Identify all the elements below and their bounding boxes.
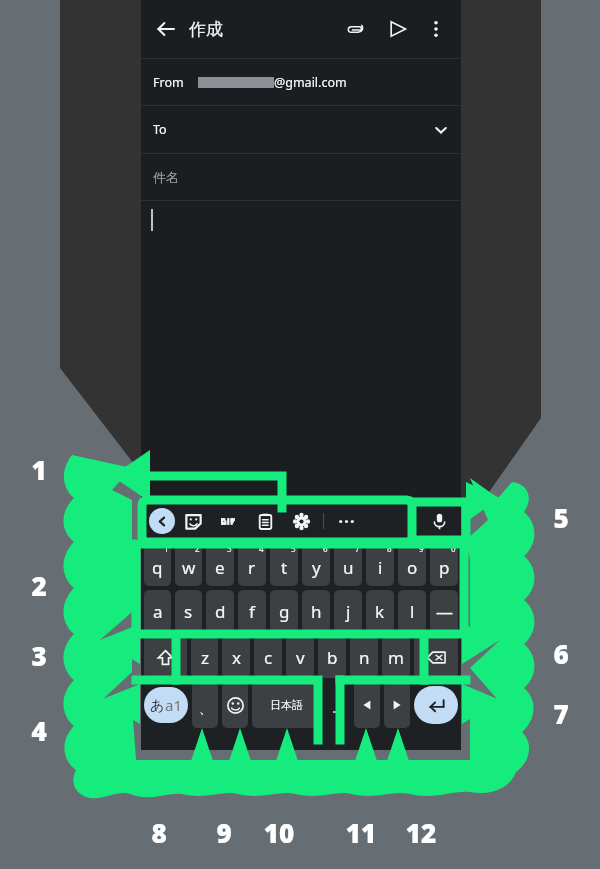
- staticText: v: [296, 646, 305, 669]
- button[interactable]: 、: [192, 682, 218, 728]
- button[interactable]: Voice input: [423, 505, 455, 537]
- button[interactable]: Back: [149, 12, 183, 46]
- staticText: r: [248, 556, 256, 579]
- staticText: e: [215, 556, 225, 579]
- staticText: o: [407, 556, 418, 579]
- staticText: To: [153, 121, 167, 138]
- button[interactable]: p: [430, 544, 458, 586]
- button[interactable]: u: [334, 544, 362, 586]
- button[interactable]: Settings: [283, 503, 319, 539]
- staticText: 7: [355, 544, 360, 554]
- staticText: h: [311, 600, 322, 623]
- staticText: g: [279, 600, 290, 623]
- button[interactable]: o: [398, 544, 426, 586]
- staticText: j: [346, 600, 351, 623]
- staticText: n: [359, 646, 370, 669]
- staticText: w: [182, 556, 196, 579]
- button[interactable]: To: [141, 106, 461, 153]
- button[interactable]: Move cursor right: [384, 682, 410, 728]
- staticText: 2: [195, 544, 200, 554]
- button[interactable]: Move cursor left: [354, 682, 380, 728]
- staticText: あ: [150, 697, 165, 715]
- staticText: 7: [540, 696, 582, 731]
- staticText: 0: [451, 544, 456, 554]
- staticText: 作成: [189, 19, 223, 40]
- button[interactable]: More options: [419, 12, 453, 46]
- staticText: 4: [259, 544, 264, 554]
- button[interactable]: x: [222, 636, 250, 678]
- staticText: x: [232, 646, 241, 669]
- button[interactable]: 日本語: [252, 682, 320, 728]
- staticText: l: [410, 600, 415, 623]
- staticText: c: [264, 646, 273, 669]
- button[interactable]: GIF: [211, 503, 247, 539]
- button[interactable]: r: [238, 544, 266, 586]
- staticText: a: [153, 600, 163, 623]
- button[interactable]: Send: [381, 12, 415, 46]
- button[interactable]: Attach file: [339, 12, 373, 46]
- staticText: m: [388, 646, 404, 669]
- button[interactable]: Shift: [144, 636, 187, 678]
- staticText: p: [439, 556, 450, 579]
- staticText: 1: [18, 452, 60, 487]
- button[interactable]: Backspace: [414, 636, 458, 678]
- staticText: 。: [332, 701, 343, 715]
- staticText: 5: [540, 500, 582, 535]
- staticText: @gmail.com: [274, 74, 347, 91]
- staticText: u: [343, 556, 354, 579]
- button[interactable]: i: [366, 544, 394, 586]
- button[interactable]: j: [334, 590, 362, 632]
- button[interactable]: e: [206, 544, 234, 586]
- staticText: b: [327, 646, 338, 669]
- button[interactable]: a: [144, 590, 171, 632]
- button[interactable]: s: [175, 590, 202, 632]
- button[interactable]: l: [398, 590, 426, 632]
- button[interactable]: k: [366, 590, 394, 632]
- button[interactable]: Enter: [414, 686, 458, 724]
- button[interactable]: Clipboard: [247, 503, 283, 539]
- button[interactable]: Switch to kana: [144, 687, 188, 723]
- button[interactable]: Collapse toolbar: [149, 508, 175, 534]
- button[interactable]: t: [270, 544, 298, 586]
- button[interactable]: n: [350, 636, 378, 678]
- staticText: 2: [18, 568, 60, 603]
- button[interactable]: —: [430, 590, 458, 632]
- staticText: 日本語: [270, 698, 303, 712]
- button[interactable]: f: [238, 590, 266, 632]
- button[interactable]: v: [286, 636, 314, 678]
- button[interactable]: 件名: [141, 154, 461, 200]
- staticText: y: [312, 556, 321, 579]
- button[interactable]: c: [254, 636, 282, 678]
- staticText: 1: [164, 544, 169, 554]
- staticText: s: [184, 600, 193, 623]
- staticText: 3: [18, 638, 60, 673]
- button[interactable]: q: [144, 544, 171, 586]
- staticText: 9: [203, 815, 245, 850]
- button[interactable]: d: [206, 590, 234, 632]
- button[interactable]: w: [175, 544, 202, 586]
- button[interactable]: 。: [324, 682, 350, 728]
- staticText: 6: [323, 544, 328, 554]
- staticText: f: [249, 600, 255, 623]
- staticText: 、: [199, 700, 212, 716]
- button[interactable]: [141, 201, 461, 499]
- staticText: 9: [419, 544, 424, 554]
- button[interactable]: z: [191, 636, 218, 678]
- staticText: 4: [18, 713, 60, 748]
- button[interactable]: m: [382, 636, 410, 678]
- button[interactable]: Stickers: [175, 503, 211, 539]
- staticText: 件名: [153, 169, 179, 185]
- staticText: 11: [340, 815, 382, 850]
- staticText: i: [378, 556, 383, 579]
- button[interactable]: From: [141, 59, 461, 105]
- button[interactable]: g: [270, 590, 298, 632]
- button[interactable]: Emoji: [222, 682, 248, 728]
- staticText: 8: [138, 815, 180, 850]
- button[interactable]: b: [318, 636, 346, 678]
- button[interactable]: y: [302, 544, 330, 586]
- staticText: a1: [165, 695, 182, 715]
- staticText: 10: [258, 815, 300, 850]
- button[interactable]: h: [302, 590, 330, 632]
- button[interactable]: More: [328, 503, 364, 539]
- staticText: 8: [387, 544, 392, 554]
